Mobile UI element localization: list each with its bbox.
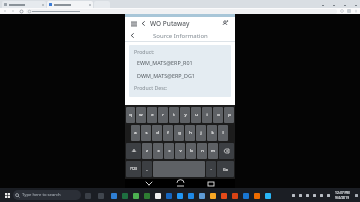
button[interactable]: Restore down	[321, 3, 325, 7]
button[interactable]: Minimize	[332, 3, 336, 7]
button[interactable]: Show desktop	[353, 192, 359, 198]
button[interactable]: Shift	[126, 143, 141, 159]
button[interactable]: App	[241, 191, 250, 200]
button[interactable]: App	[109, 191, 118, 200]
button[interactable]: Maximize	[343, 3, 347, 7]
staticText: WO Putaway	[150, 19, 190, 28]
button[interactable]: Forward	[11, 9, 15, 13]
button[interactable]	[47, 1, 93, 8]
button[interactable]: App	[153, 191, 162, 200]
button[interactable]: k	[207, 125, 217, 141]
button[interactable]: 12:37 PM	[334, 190, 351, 200]
button[interactable]: h	[185, 125, 195, 141]
button[interactable]: App	[142, 191, 151, 200]
button[interactable]: q	[126, 107, 135, 123]
button[interactable]: Start	[2, 190, 12, 200]
button[interactable]: Account	[220, 18, 231, 29]
button[interactable]: Back	[3, 9, 7, 13]
button[interactable]: u	[191, 107, 201, 123]
staticText: c	[168, 148, 171, 154]
staticText: b	[190, 148, 193, 154]
button[interactable]: Collections	[347, 9, 351, 13]
button[interactable]: Menu	[129, 19, 138, 28]
button[interactable]: l	[218, 125, 228, 141]
button[interactable]: Home	[173, 179, 187, 188]
staticText: q	[129, 112, 132, 118]
button[interactable]: App	[186, 191, 195, 200]
button[interactable]	[2, 1, 46, 8]
button[interactable]: ?123	[126, 161, 141, 177]
button[interactable]: d	[152, 125, 162, 141]
button[interactable]: s	[141, 125, 151, 141]
button[interactable]: App	[164, 191, 173, 200]
button[interactable]: r	[158, 107, 168, 123]
staticText: s	[145, 130, 148, 136]
button[interactable]: n	[197, 143, 207, 159]
button[interactable]: Favorites	[340, 9, 344, 13]
button[interactable]: Close	[354, 3, 358, 7]
button[interactable]: Tray icon	[291, 193, 296, 198]
staticText: j	[200, 130, 202, 136]
button[interactable]: Back	[142, 179, 156, 188]
button[interactable]: ,	[142, 161, 152, 177]
staticText: EWM_MATS@ERP_R01	[137, 59, 193, 66]
button[interactable]: Reload	[19, 9, 23, 13]
button[interactable]: Tray icon	[298, 193, 303, 198]
button[interactable]: z	[142, 143, 152, 159]
button[interactable]: o	[213, 107, 223, 123]
button[interactable]: f	[163, 125, 173, 141]
button[interactable]: App	[175, 191, 184, 200]
button[interactable]: p	[224, 107, 234, 123]
button[interactable]: Delete	[219, 143, 234, 159]
button[interactable]: Recent apps	[204, 179, 218, 188]
button[interactable]: .	[206, 161, 216, 177]
button[interactable]: Product:	[129, 45, 231, 97]
staticText: f	[167, 130, 169, 136]
button[interactable]: App	[197, 191, 206, 200]
staticText: m	[211, 148, 215, 154]
button[interactable]: x	[153, 143, 163, 159]
button[interactable]: y	[180, 107, 190, 123]
button[interactable]: a	[131, 125, 140, 141]
button[interactable]: i	[202, 107, 212, 123]
button[interactable]: v	[175, 143, 185, 159]
button[interactable]	[26, 9, 337, 14]
button[interactable]: Tray icon	[305, 193, 310, 198]
button[interactable]: g	[174, 125, 184, 141]
button[interactable]: w	[136, 107, 146, 123]
button[interactable]: App	[230, 191, 239, 200]
staticText: r	[162, 112, 164, 118]
button[interactable]: t	[169, 107, 179, 123]
staticText: p	[228, 112, 231, 118]
button[interactable]: Tray icon	[319, 193, 324, 198]
staticText: e	[151, 112, 154, 118]
button[interactable]: App	[263, 191, 272, 200]
button[interactable]: Task view	[83, 191, 92, 200]
button[interactable]: Settings and more	[354, 9, 358, 13]
button[interactable]: App	[208, 191, 217, 200]
button[interactable]: App	[120, 191, 129, 200]
button[interactable]: Tray icon	[326, 193, 331, 198]
button[interactable]: c	[164, 143, 174, 159]
staticText: k	[211, 130, 214, 136]
button[interactable]: Go	[217, 161, 234, 177]
staticText: DWM_MATS@ERP_DG1	[137, 72, 195, 79]
button[interactable]: e	[147, 107, 157, 123]
button[interactable]: Navigate up	[128, 31, 137, 40]
button[interactable]: Back	[139, 19, 148, 28]
button[interactable]: App	[252, 191, 261, 200]
button[interactable]: m	[208, 143, 218, 159]
button[interactable]: App	[131, 191, 140, 200]
button[interactable]: j	[196, 125, 206, 141]
button[interactable]: b	[186, 143, 196, 159]
button[interactable]: Type here to search	[13, 190, 81, 200]
staticText: 12:37 PM	[335, 190, 350, 195]
button[interactable]: Cortana	[96, 191, 105, 200]
staticText: .	[210, 166, 212, 172]
button[interactable]: Tray icon	[312, 193, 317, 198]
staticText: Source Information	[153, 32, 208, 40]
button[interactable]: App	[219, 191, 228, 200]
staticText: i	[206, 112, 208, 118]
